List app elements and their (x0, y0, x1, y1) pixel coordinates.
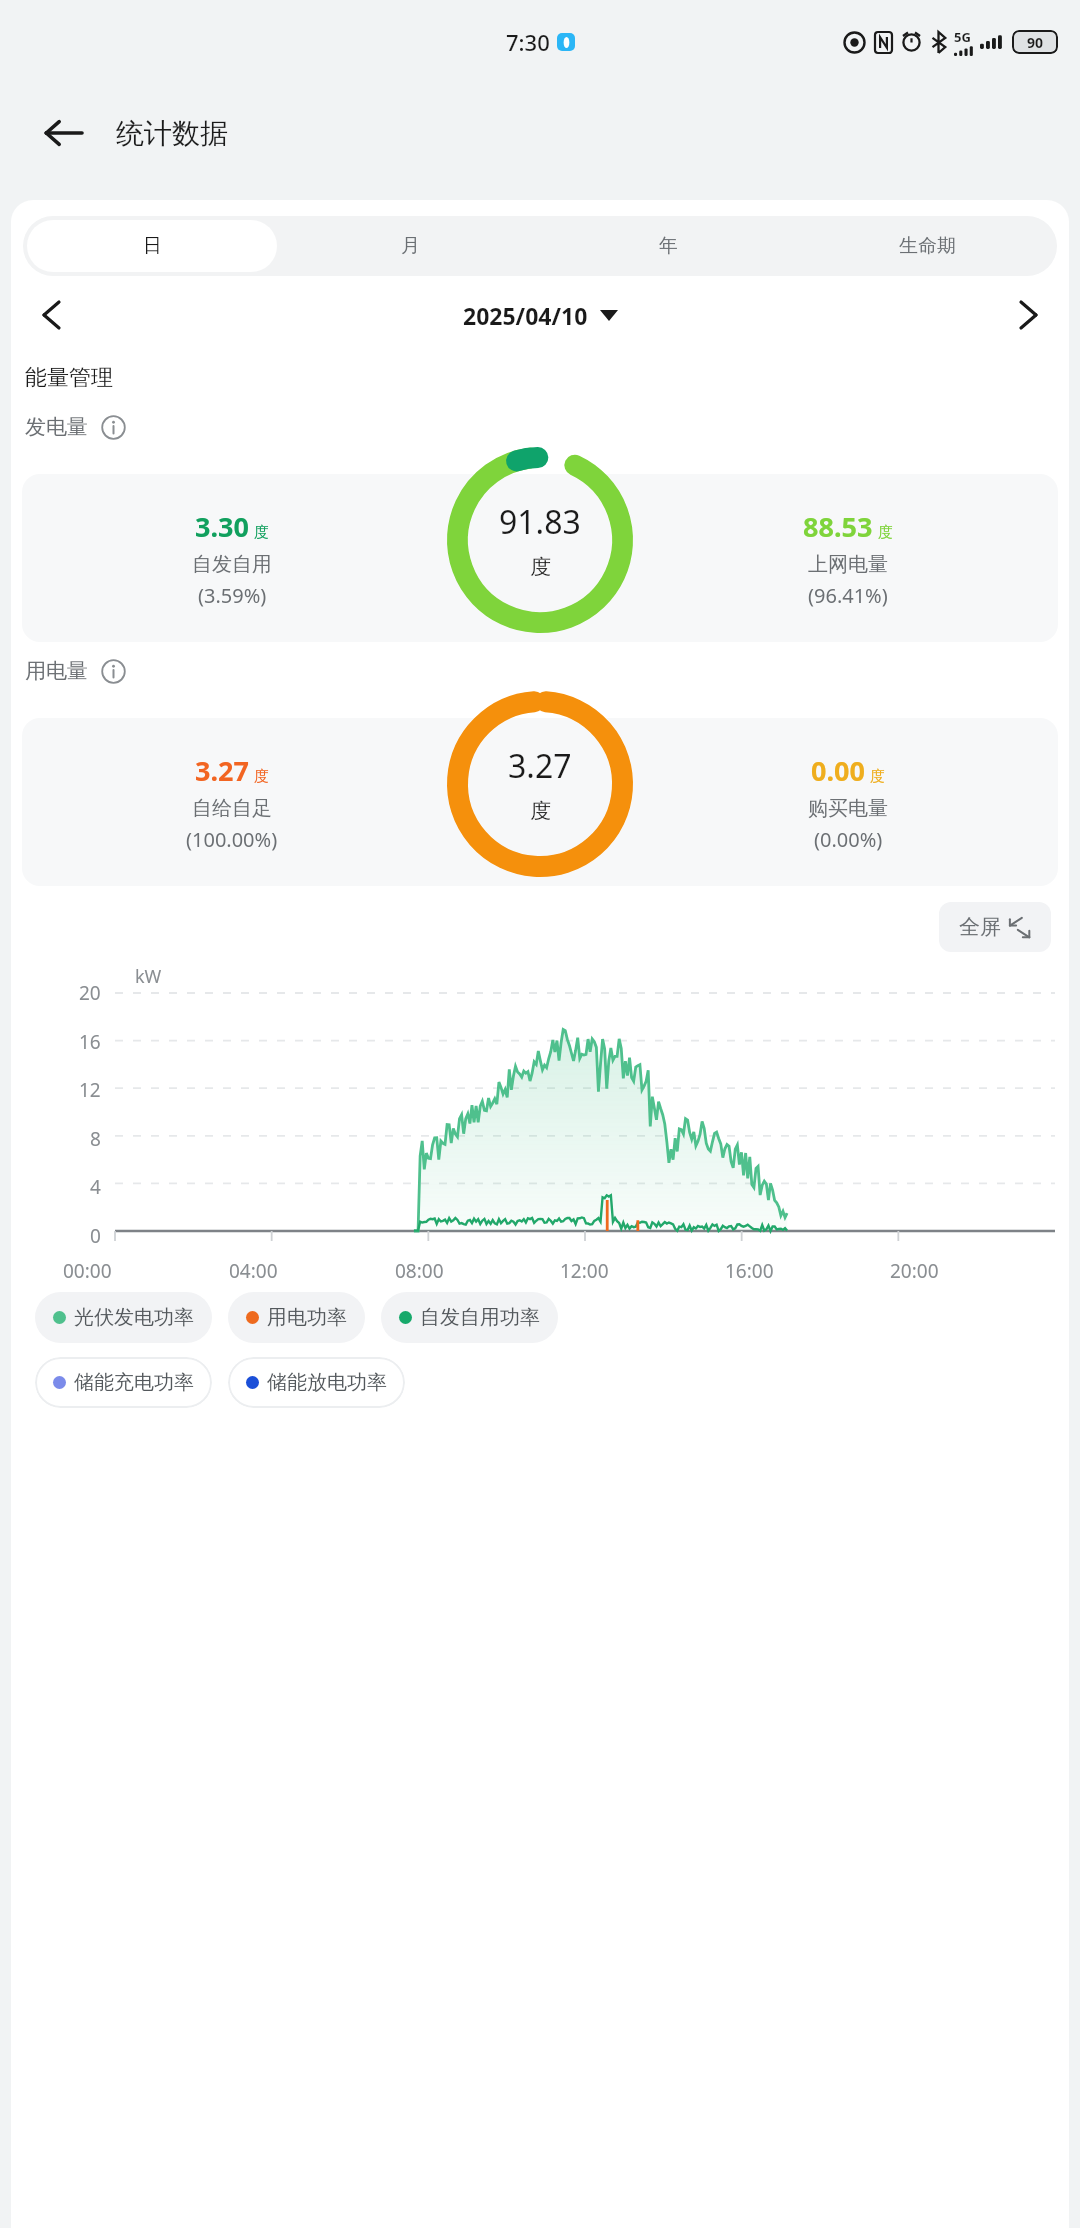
staticText: 购买电量 (808, 796, 888, 821)
button[interactable]: 光伏发电功率 (35, 1292, 212, 1343)
staticText: 20 (79, 980, 101, 1006)
staticText: 生命期 (899, 234, 956, 258)
staticText: 自发自用 (192, 552, 272, 577)
staticText: 统计数据 (116, 116, 228, 151)
staticText: 度 (530, 554, 551, 580)
staticText: 0.00 (811, 752, 865, 789)
staticText: 3.27 (195, 752, 249, 789)
staticText: 12 (79, 1077, 101, 1103)
button[interactable]: 日 (27, 220, 277, 272)
staticText: 90 (1027, 33, 1044, 52)
staticText: 00:00 (63, 1258, 112, 1284)
staticText: 16 (79, 1029, 101, 1055)
staticText: 7:30 (506, 27, 550, 57)
staticText: (0.00%) (814, 826, 883, 853)
staticText: 08:00 (395, 1258, 444, 1284)
staticText: 自给自足 (192, 796, 272, 821)
staticText: 年 (659, 234, 678, 258)
staticText: 光伏发电功率 (74, 1305, 194, 1330)
staticText: kW (135, 964, 162, 989)
button[interactable]: Info (98, 412, 128, 442)
staticText: 日 (143, 234, 162, 258)
staticText: 储能放电功率 (267, 1370, 387, 1395)
button[interactable]: Info (98, 656, 128, 686)
staticText: 5G (954, 28, 971, 46)
button[interactable]: 储能放电功率 (228, 1357, 405, 1408)
staticText: 0 (90, 1223, 101, 1245)
staticText: 度 (530, 798, 551, 824)
staticText: 度 (254, 523, 269, 542)
staticText: 度 (254, 767, 269, 786)
staticText: 能量管理 (25, 364, 113, 392)
button[interactable]: 用电功率 (228, 1292, 365, 1343)
button[interactable]: 生命期 (802, 220, 1053, 272)
button[interactable]: Next (1003, 289, 1055, 341)
staticText: 3.27 (508, 744, 572, 788)
staticText: 发电量 (25, 414, 88, 440)
staticText: 用电量 (25, 658, 88, 684)
button[interactable]: 3.30 (22, 508, 442, 609)
staticText: (100.00%) (186, 826, 278, 853)
staticText: 4 (90, 1174, 101, 1200)
button[interactable]: 全屏 (939, 902, 1051, 952)
button[interactable]: 月 (285, 220, 535, 272)
button[interactable]: 88.53 (638, 508, 1058, 609)
staticText: 91.83 (499, 500, 581, 544)
staticText: 2025/04/10 (463, 300, 588, 331)
button[interactable]: 2025/04/10 (77, 300, 1003, 331)
staticText: 16:00 (725, 1258, 774, 1284)
button[interactable]: 3.27 (22, 752, 442, 853)
staticText: 12:00 (560, 1258, 609, 1284)
button[interactable]: 0.00 (638, 752, 1058, 853)
button[interactable]: 年 (543, 220, 794, 272)
staticText: 月 (401, 234, 420, 258)
staticText: 20:00 (890, 1258, 939, 1284)
staticText: 度 (878, 523, 893, 542)
staticText: 88.53 (803, 508, 873, 545)
staticText: 自发自用功率 (420, 1305, 540, 1330)
staticText: 8 (90, 1126, 101, 1152)
button[interactable]: 储能充电功率 (35, 1357, 212, 1408)
staticText: 3.30 (195, 508, 249, 545)
staticText: 度 (870, 767, 885, 786)
staticText: 储能充电功率 (74, 1370, 194, 1395)
staticText: (3.59%) (198, 582, 267, 609)
button[interactable]: Previous (25, 289, 77, 341)
staticText: 04:00 (229, 1258, 278, 1284)
staticText: (96.41%) (808, 582, 888, 609)
staticText: 全屏 (959, 914, 1001, 940)
button[interactable]: 自发自用功率 (381, 1292, 558, 1343)
staticText: 上网电量 (808, 552, 888, 577)
staticText: 用电功率 (267, 1305, 347, 1330)
button[interactable]: Back (34, 104, 92, 162)
